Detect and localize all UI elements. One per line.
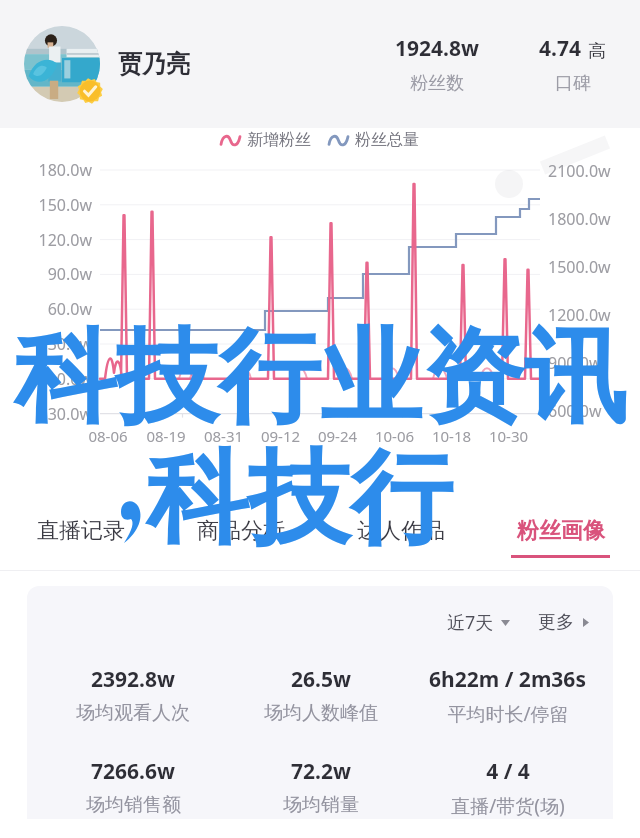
staticText: 更多 (538, 611, 574, 634)
button[interactable]: 近7天 (443, 606, 514, 639)
staticText: 2100.0w (548, 160, 640, 182)
staticText: 08-31 (195, 426, 252, 446)
staticText: 科技行业资讯 (0, 314, 640, 442)
staticText: 科技行 (146, 435, 452, 563)
staticText: 场均销量 (283, 793, 359, 817)
staticText: 180.0w (30, 159, 92, 181)
button[interactable]: 商品分析 (160, 500, 320, 562)
staticText: 7266.6w (91, 757, 175, 786)
staticText: 10-30 (480, 426, 537, 446)
staticText: 90.0w (30, 263, 92, 285)
staticText: 4 / 4 (486, 757, 530, 786)
button[interactable]: 直播记录 (0, 500, 160, 562)
staticText: 商品分析 (197, 517, 285, 545)
staticText: 60.0w (30, 298, 92, 320)
staticText: 1200.0w (548, 304, 640, 326)
staticText: 1924.8w (395, 34, 479, 63)
staticText: 1500.0w (548, 256, 640, 278)
staticText: 09-12 (252, 426, 309, 446)
staticText: 粉丝总量 (355, 130, 419, 150)
staticText: 4.74 (539, 34, 581, 63)
staticText: 贾乃亮 (118, 49, 190, 79)
staticText: 场均销售额 (86, 793, 181, 817)
staticText: 10-18 (423, 426, 480, 446)
staticText: 09-24 (309, 426, 366, 446)
staticText: 直播/带货(场) (451, 793, 565, 819)
staticText: 2392.8w (91, 665, 175, 694)
staticText: 高 (588, 40, 606, 63)
staticText: 达人作品 (357, 517, 445, 545)
staticText: 120.0w (30, 229, 92, 251)
staticText: 0.0w (30, 368, 92, 390)
staticText: 900.0w (548, 352, 640, 374)
staticText: 场均人数峰值 (264, 701, 378, 725)
staticText: 粉丝数 (410, 72, 464, 95)
staticText: 150.0w (30, 194, 92, 216)
staticText: 近7天 (447, 610, 494, 635)
staticText: 口碑 (555, 72, 591, 95)
staticText: 600.0w (548, 400, 640, 422)
staticText: 26.5w (291, 665, 351, 694)
staticText: 粉丝画像 (517, 517, 605, 545)
button[interactable]: 粉丝画像 (480, 500, 640, 562)
staticText: 场均观看人次 (76, 701, 190, 725)
staticText: 直播记录 (37, 517, 125, 545)
staticText: 72.2w (291, 757, 351, 786)
staticText: 6h22m / 2m36s (429, 665, 586, 694)
staticText: 30.0w (30, 333, 92, 355)
button[interactable]: 达人作品 (320, 500, 480, 562)
staticText: 1800.0w (548, 208, 640, 230)
staticText: 10-06 (366, 426, 423, 446)
staticText: 08-06 (79, 426, 137, 446)
staticText: 08-19 (137, 426, 195, 446)
button[interactable]: 更多 (534, 607, 593, 638)
staticText: -30.0w (30, 403, 92, 425)
staticText: 平均时长/停留 (447, 701, 569, 727)
staticText: 新增粉丝 (247, 130, 311, 150)
